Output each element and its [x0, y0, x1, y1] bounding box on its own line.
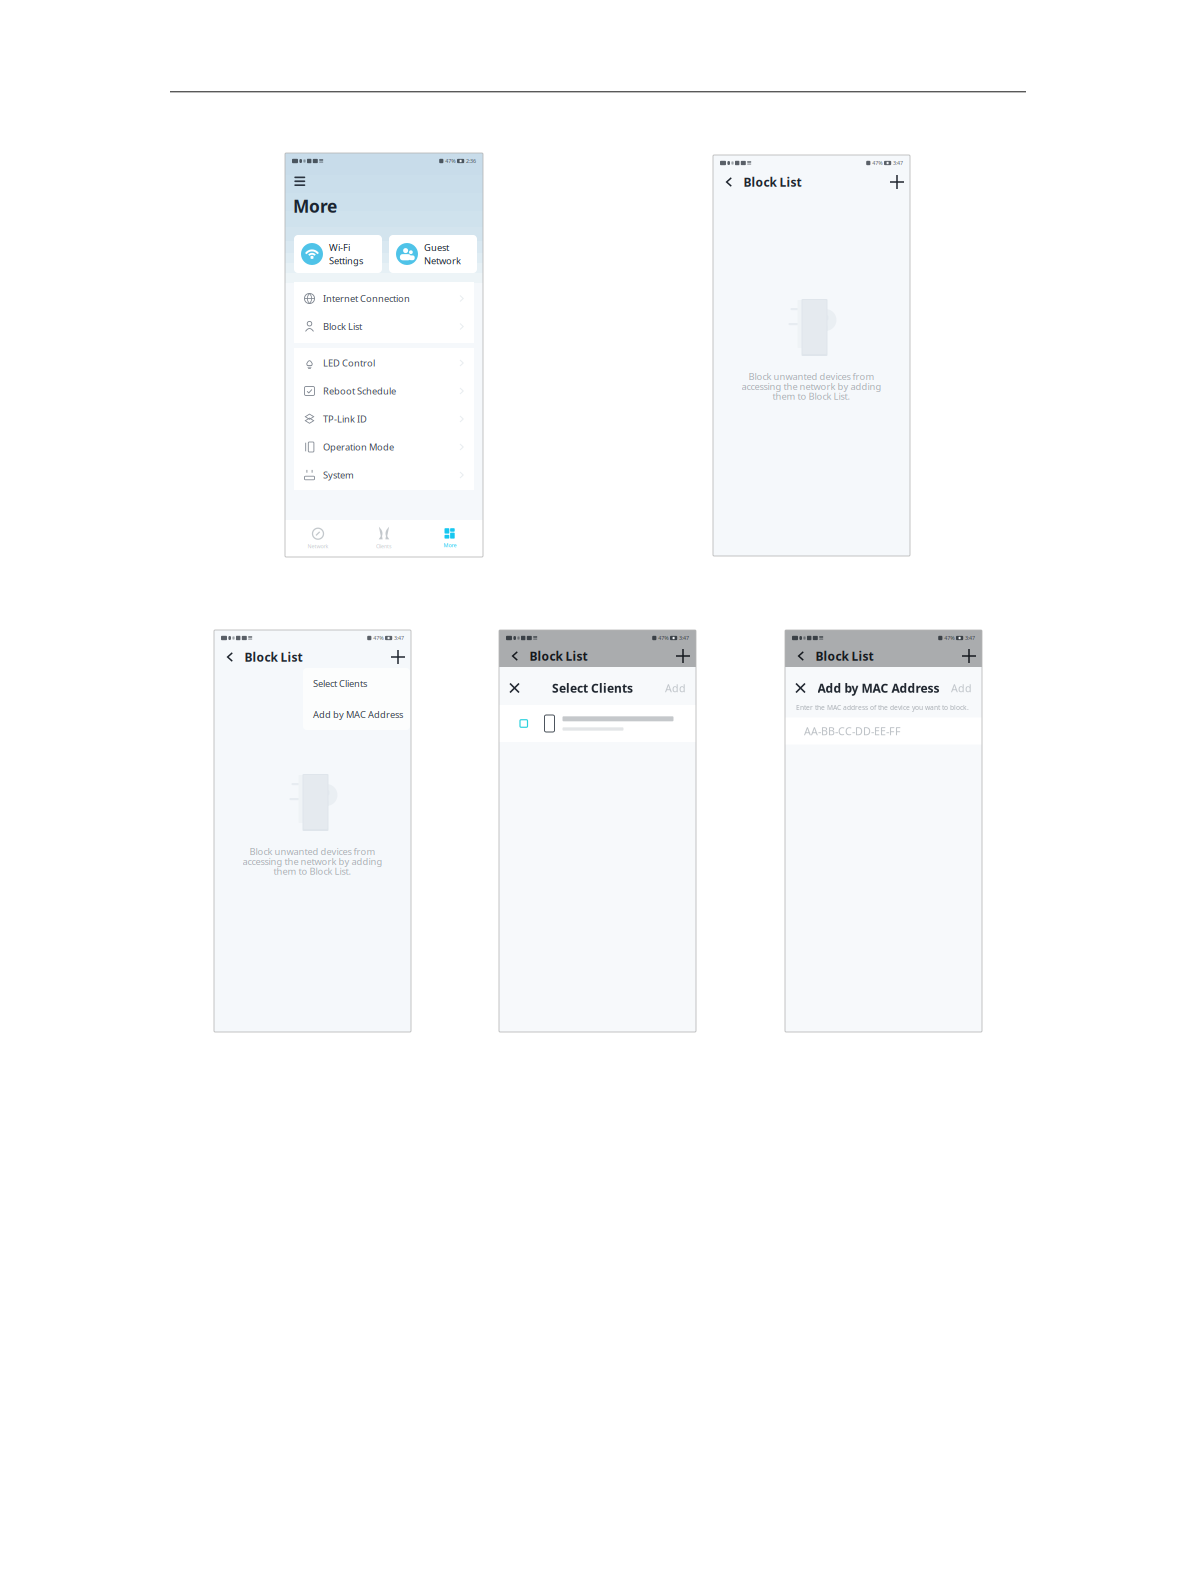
staticText: AA-BB-CC-DD-EE-FF [804, 724, 901, 738]
button[interactable]: Add by MAC Address [303, 699, 410, 730]
staticText: accessing the network by adding [741, 380, 881, 393]
button[interactable]: Back [796, 650, 807, 661]
staticText: 3:47 [893, 159, 903, 167]
button[interactable]: LED Control [294, 349, 474, 377]
staticText: TP-Link ID [323, 413, 367, 425]
staticText: Wi-Fi [329, 241, 350, 254]
staticText: 47% [658, 634, 668, 642]
staticText: Add by MAC Address [313, 708, 403, 721]
staticText: Operation Mode [323, 441, 394, 453]
button[interactable]: More [417, 528, 483, 549]
button[interactable]: Wi-Fi [294, 235, 382, 273]
button[interactable]: Add [890, 175, 904, 189]
staticText: System [323, 469, 354, 481]
staticText: Block List [743, 174, 801, 190]
button[interactable]: Add [676, 649, 690, 663]
staticText: Network [307, 543, 328, 550]
button[interactable]: Back [510, 650, 521, 661]
button[interactable]: Clients [351, 527, 417, 550]
button[interactable] [499, 705, 696, 742]
staticText: 2:36 [466, 157, 476, 165]
staticText: LED Control [323, 357, 375, 369]
staticText: Add [951, 681, 972, 695]
button[interactable]: Select Clients [303, 668, 410, 699]
staticText: 3:47 [394, 634, 404, 642]
staticText: Add by MAC Address [817, 680, 939, 696]
button[interactable]: Back [724, 176, 735, 187]
staticText: accessing the network by adding [242, 855, 382, 868]
staticText: Block List [815, 648, 873, 664]
staticText: Guest [424, 241, 449, 254]
staticText: 3:47 [679, 634, 689, 642]
button[interactable]: Add [391, 650, 405, 664]
button[interactable]: Internet Connection [294, 284, 474, 312]
button[interactable]: TP-Link ID [294, 405, 474, 433]
staticText: Block List [323, 320, 362, 333]
staticText: 3:47 [965, 634, 975, 642]
staticText: Clients [376, 543, 392, 550]
button[interactable]: System [294, 461, 474, 489]
staticText: Block List [529, 648, 587, 664]
staticText: Block List [244, 649, 302, 665]
staticText: 47% [445, 157, 455, 165]
staticText: Internet Connection [323, 292, 410, 305]
staticText: More [293, 194, 337, 217]
staticText: Enter the MAC address of the device you … [796, 703, 969, 712]
button[interactable]: Block List [294, 312, 474, 340]
staticText: Block unwanted devices from [249, 845, 375, 858]
staticText: Add [665, 681, 686, 695]
staticText: Network [424, 254, 461, 267]
button[interactable]: Add [665, 681, 686, 695]
button[interactable]: Network [285, 527, 351, 550]
button[interactable]: Guest [389, 235, 477, 273]
staticText: Reboot Schedule [323, 385, 396, 397]
staticText: Select Clients [552, 680, 633, 696]
button[interactable]: Back [225, 651, 236, 662]
staticText: 47% [944, 634, 954, 642]
staticText: More [443, 542, 456, 549]
button[interactable]: Operation Mode [294, 433, 474, 461]
staticText: them to Block List. [273, 865, 351, 877]
button[interactable]: Add [951, 681, 972, 695]
staticText: 47% [872, 159, 882, 167]
button[interactable]: Add [962, 649, 976, 663]
staticText: Select Clients [313, 677, 367, 690]
button[interactable]: Reboot Schedule [294, 377, 474, 405]
staticText: them to Block List. [772, 390, 850, 402]
button[interactable]: Close [509, 682, 520, 693]
staticText: 47% [373, 634, 383, 642]
staticText: Settings [329, 254, 363, 267]
button[interactable]: Close [795, 682, 806, 693]
staticText: Block unwanted devices from [748, 370, 874, 383]
